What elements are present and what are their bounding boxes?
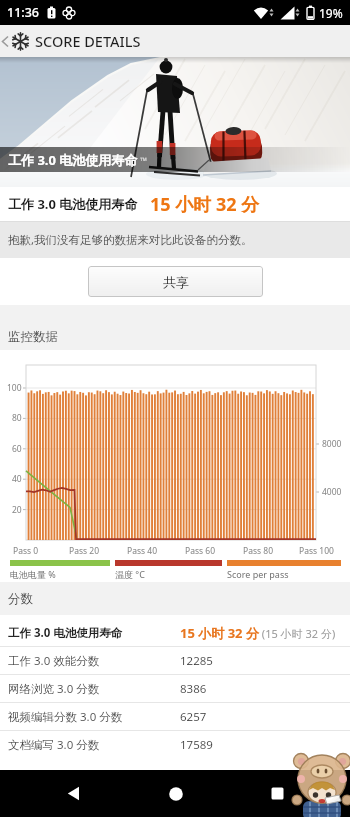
- staticText: Pass 20: [69, 545, 99, 557]
- staticText: 工作 3.0 电池使用寿命: [8, 151, 138, 169]
- staticText: 监控数据: [8, 329, 58, 345]
- staticText: 6257: [180, 709, 207, 725]
- button[interactable]: [58, 770, 88, 817]
- staticText: 8386: [180, 681, 207, 697]
- button[interactable]: 视频编辑分数 3.0 分数: [0, 703, 350, 731]
- staticText: 分数: [8, 591, 33, 607]
- staticText: Score per pass: [227, 568, 289, 580]
- staticText: 工作 3.0 效能分数: [8, 653, 100, 669]
- staticText: SCORE DETAILS: [35, 31, 141, 51]
- staticText: 15 小时 32 分: [150, 192, 260, 217]
- button[interactable]: 工作 3.0 效能分数: [0, 647, 350, 675]
- staticText: Pass 80: [243, 545, 273, 557]
- staticText: 温度 °C: [115, 568, 145, 580]
- staticText: 工作 3.0 电池使用寿命: [8, 195, 138, 213]
- button[interactable]: 工作 3.0 电池使用寿命: [0, 619, 350, 647]
- button[interactable]: 共享: [88, 266, 263, 297]
- staticText: Pass 0: [13, 545, 39, 557]
- button[interactable]: 网络浏览 3.0 分数: [0, 675, 350, 703]
- staticText: (15 小时 32 分): [259, 626, 336, 641]
- staticText: 8000: [322, 438, 342, 450]
- staticText: 视频编辑分数 3.0 分数: [8, 709, 123, 725]
- button[interactable]: 文档编写 3.0 分数: [0, 731, 350, 759]
- staticText: Pass 100: [299, 545, 334, 557]
- staticText: 网络浏览 3.0 分数: [8, 681, 100, 697]
- staticText: 11:36: [7, 4, 40, 21]
- staticText: 15 小时 32 分: [180, 624, 259, 642]
- staticText: 4000: [322, 486, 342, 498]
- staticText: 17589: [180, 737, 213, 753]
- staticText: 19%: [319, 5, 343, 21]
- staticText: Pass 40: [127, 545, 157, 557]
- staticText: ™: [138, 154, 148, 166]
- staticText: 40: [12, 473, 22, 485]
- staticText: 60: [12, 443, 22, 455]
- button[interactable]: [262, 770, 292, 817]
- staticText: 共享: [163, 274, 189, 290]
- staticText: 文档编写 3.0 分数: [8, 737, 100, 753]
- staticText: 80: [12, 412, 22, 424]
- staticText: 12285: [180, 653, 213, 669]
- staticText: 工作 3.0 电池使用寿命: [8, 625, 123, 641]
- staticText: Pass 60: [185, 545, 215, 557]
- staticText: 抱歉,我们没有足够的数据来对比此设备的分数。: [8, 232, 253, 248]
- staticText: 100: [7, 382, 22, 394]
- button[interactable]: [160, 770, 191, 817]
- staticText: 电池电量 %: [10, 568, 56, 580]
- button[interactable]: [0, 25, 10, 57]
- staticText: 20: [12, 504, 22, 516]
